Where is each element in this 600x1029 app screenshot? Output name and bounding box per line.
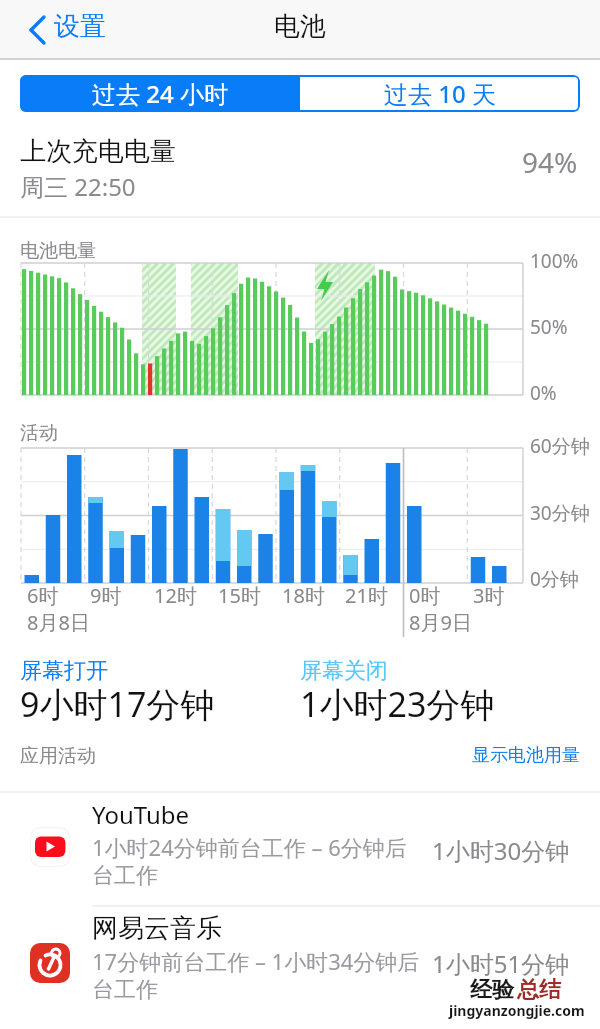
staticText: 9小时17分钟 bbox=[20, 681, 215, 727]
staticText: 电池 bbox=[274, 10, 326, 43]
staticText: 6时 bbox=[27, 582, 59, 609]
staticText: 8月9日 bbox=[409, 609, 472, 636]
staticText: jingyanzongjie.com bbox=[449, 1001, 585, 1020]
staticText: 总结 bbox=[517, 976, 561, 1004]
staticText: 8月8日 bbox=[27, 609, 90, 636]
staticText: 活动 bbox=[20, 421, 58, 445]
staticText: 经验 bbox=[470, 976, 514, 1004]
button[interactable] bbox=[0, 793, 600, 906]
staticText: 30分钟 bbox=[530, 500, 590, 526]
staticText: YouTube bbox=[92, 798, 190, 831]
button[interactable]: 过去 24 小时 bbox=[20, 75, 300, 112]
staticText: 18时 bbox=[282, 582, 325, 609]
staticText: 1小时30分钟 bbox=[432, 834, 570, 867]
staticText: 100% bbox=[530, 248, 579, 274]
staticText: 应用活动 bbox=[20, 744, 96, 768]
staticText: 21时 bbox=[345, 582, 388, 609]
staticText: 网易云音乐 bbox=[92, 912, 222, 945]
staticText: 0分钟 bbox=[530, 566, 579, 592]
staticText: 上次充电电量 bbox=[20, 135, 176, 168]
staticText: 0% bbox=[530, 380, 557, 406]
button[interactable] bbox=[0, 907, 600, 1029]
staticText: 94% bbox=[522, 143, 578, 181]
staticText: 17分钟前台工作 – 1小时34分钟后 bbox=[92, 946, 420, 976]
staticText: 显示电池用量 bbox=[472, 744, 580, 767]
staticText: 60分钟 bbox=[530, 433, 590, 459]
staticText: 0时 bbox=[409, 582, 441, 609]
staticText: 3时 bbox=[473, 582, 505, 609]
staticText: 1小时24分钟前台工作 – 6分钟后 bbox=[92, 832, 407, 862]
staticText: 9时 bbox=[90, 582, 122, 609]
staticText: 过去 10 天 bbox=[384, 77, 496, 110]
button[interactable]: 设置 bbox=[26, 8, 126, 52]
button[interactable]: 过去 10 天 bbox=[300, 75, 580, 112]
staticText: 屏幕打开 bbox=[20, 657, 108, 685]
staticText: 50% bbox=[530, 314, 568, 340]
staticText: 台工作 bbox=[92, 862, 158, 890]
staticText: 周三 22:50 bbox=[20, 170, 136, 203]
staticText: 12时 bbox=[154, 582, 197, 609]
staticText: 台工作 bbox=[92, 976, 158, 1004]
staticText: 过去 24 小时 bbox=[92, 77, 228, 110]
staticText: 1小时23分钟 bbox=[300, 681, 495, 727]
staticText: 15时 bbox=[218, 582, 261, 609]
staticText: 设置 bbox=[54, 10, 106, 43]
staticText: 屏幕关闭 bbox=[300, 657, 388, 685]
button[interactable] bbox=[420, 740, 585, 774]
staticText: 电池电量 bbox=[20, 239, 96, 263]
staticText: 1小时51分钟 bbox=[432, 947, 570, 980]
